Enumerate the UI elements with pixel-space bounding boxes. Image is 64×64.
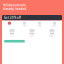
staticText: 15 min — [10, 35, 14, 37]
staticText: Get 20% off — [4, 16, 21, 19]
staticText: Free — [50, 33, 54, 35]
staticText: today — [30, 35, 34, 37]
button[interactable]: Fresh — [22, 29, 42, 37]
button[interactable]: Sushi — [17, 22, 32, 27]
button[interactable]: Drinks — [47, 22, 62, 27]
staticText: Fresh — [29, 33, 34, 35]
button[interactable]: Bowls — [32, 22, 47, 27]
staticText: Pizza — [7, 25, 11, 27]
button[interactable]: Fast — [2, 29, 22, 37]
button[interactable]: Pizza — [2, 22, 17, 27]
staticText: Drinks — [52, 25, 57, 27]
staticText: Fast — [10, 33, 14, 35]
staticText: Delicious meals — [2, 3, 25, 7]
staticText: already loaded — [2, 7, 26, 11]
staticText: Sushi — [22, 25, 26, 27]
button[interactable]: Get 20% off — [2, 15, 62, 20]
staticText: Bowls — [37, 25, 41, 27]
button[interactable]: Free — [42, 29, 62, 37]
staticText: delivery — [49, 35, 55, 37]
